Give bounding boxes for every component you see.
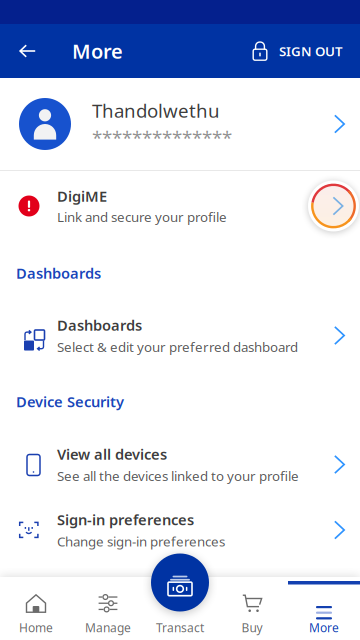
button[interactable]: More	[288, 577, 360, 640]
button[interactable]: Home	[0, 577, 72, 640]
button[interactable]: Dashboards	[0, 305, 360, 366]
staticText: **************	[92, 125, 232, 150]
button[interactable]: Buy	[216, 577, 288, 640]
staticText: Dashboards	[57, 315, 142, 335]
button[interactable]: Transact	[151, 553, 209, 611]
button[interactable]: Transact	[144, 577, 216, 640]
staticText: DigiME	[57, 186, 107, 206]
staticText: SIGN OUT	[279, 42, 343, 60]
staticText: Home	[19, 619, 53, 635]
staticText: Transact	[156, 619, 204, 635]
staticText: Change sign-in preferences	[57, 532, 225, 550]
staticText: Manage	[85, 619, 131, 635]
staticText: More	[72, 38, 123, 64]
button[interactable]: View all devices	[0, 437, 360, 492]
staticText: Buy	[241, 619, 262, 635]
staticText: Thandolwethu	[92, 98, 220, 123]
button[interactable]: DigiME	[0, 171, 360, 241]
staticText: Dashboards	[16, 263, 101, 283]
staticText: See all the devices linked to your profi…	[57, 467, 299, 485]
button[interactable]: Sign-in preferences	[0, 492, 360, 568]
staticText: More	[309, 619, 339, 635]
button[interactable]: SIGN OUT	[238, 24, 360, 78]
button[interactable]: Thandolwethu	[0, 78, 360, 170]
staticText: View all devices	[57, 444, 167, 464]
staticText: Device Security	[16, 392, 124, 411]
button[interactable]: Back	[0, 24, 72, 78]
button[interactable]: Manage	[72, 577, 144, 640]
staticText: Link and secure your profile	[57, 208, 227, 226]
staticText: Select & edit your preferred dashboard	[57, 338, 298, 356]
staticText: Sign-in preferences	[57, 510, 194, 529]
